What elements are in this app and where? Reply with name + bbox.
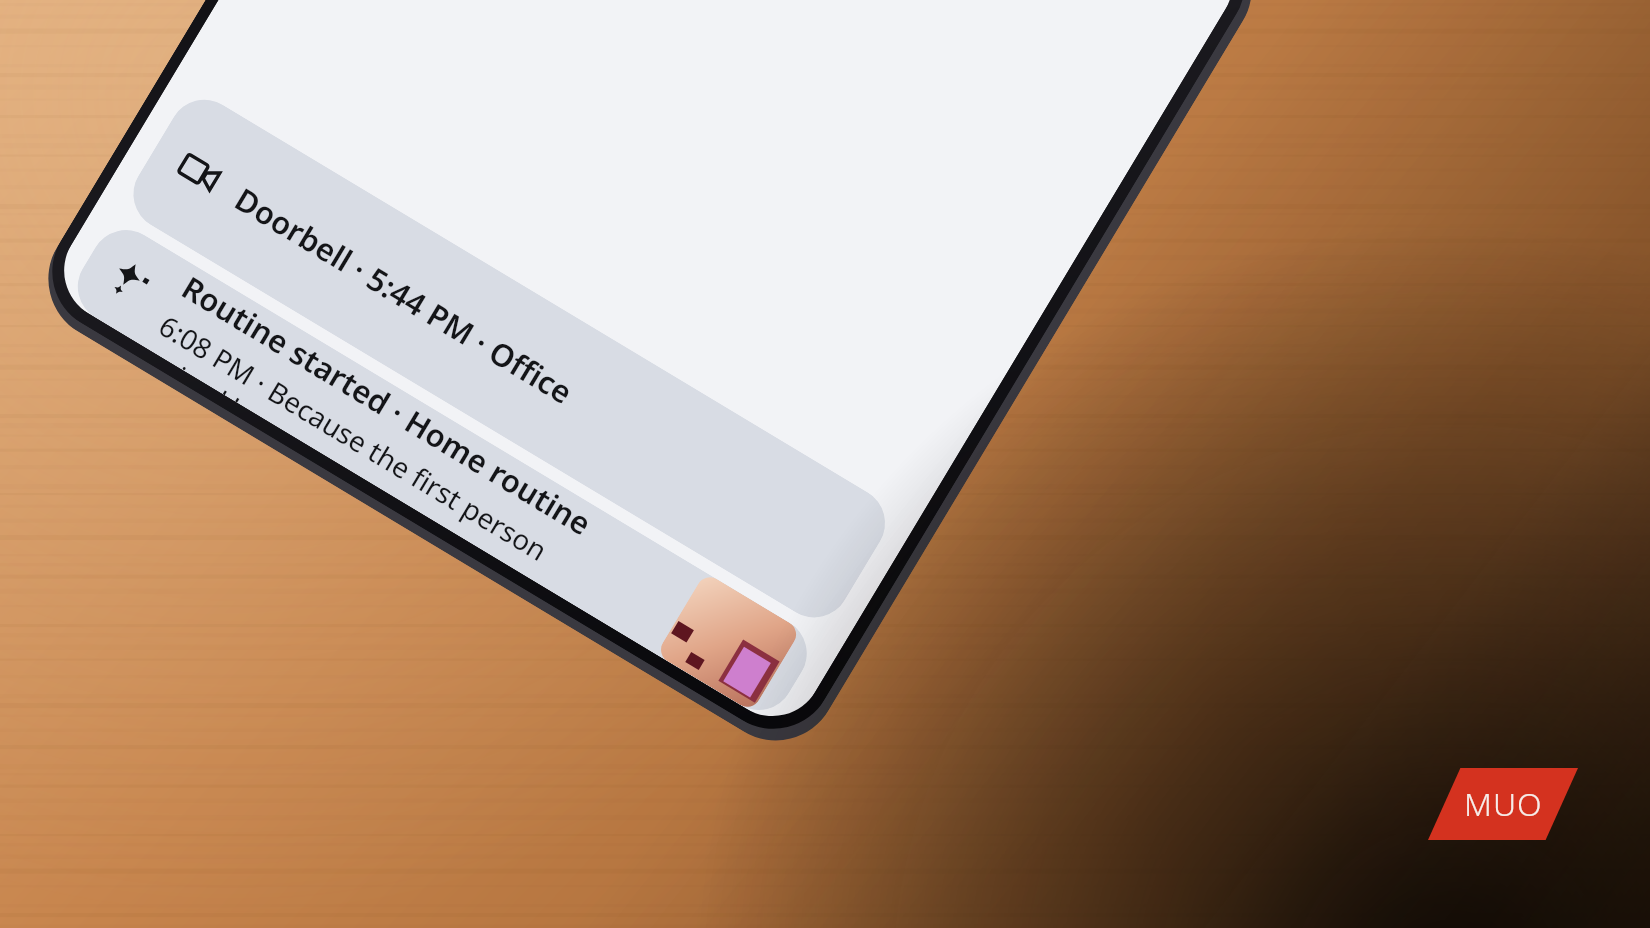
other: MUO watermark xyxy=(1428,768,1578,840)
staticText: 6:08 PM · Because the first person arriv… xyxy=(147,306,555,579)
staticText: Routine started · Home routine xyxy=(174,266,599,544)
staticText: MUO xyxy=(1464,782,1543,826)
button[interactable]: Routine started · Home routine xyxy=(64,217,820,723)
staticText: Doorbell · 5:44 PM · Office xyxy=(227,178,581,413)
button[interactable]: Doorbell · 5:44 PM · Office xyxy=(120,86,898,631)
button[interactable]: Camera snapshot xyxy=(656,572,801,712)
